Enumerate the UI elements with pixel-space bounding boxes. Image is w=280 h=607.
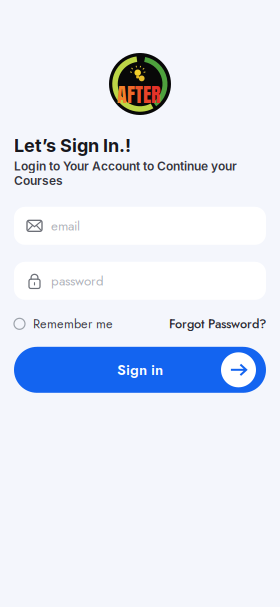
staticText: password	[51, 271, 104, 290]
staticText: T	[135, 79, 143, 109]
staticText: Login to Your Account to Continue your C…	[14, 159, 237, 188]
staticText: F	[127, 79, 135, 109]
button[interactable]: Sign in	[14, 347, 266, 393]
staticText: Let’s Sign In.!	[14, 134, 131, 156]
staticText: email	[51, 216, 80, 235]
staticText: R	[151, 79, 161, 109]
staticText: Remember me	[33, 315, 113, 333]
staticText: Sign in	[117, 359, 163, 380]
staticText: E	[143, 79, 151, 109]
button[interactable]: Remember me	[14, 313, 113, 335]
button[interactable]: Forgot Password?	[169, 313, 266, 335]
staticText: Forgot Password?	[169, 315, 266, 333]
staticText: A	[117, 79, 127, 109]
